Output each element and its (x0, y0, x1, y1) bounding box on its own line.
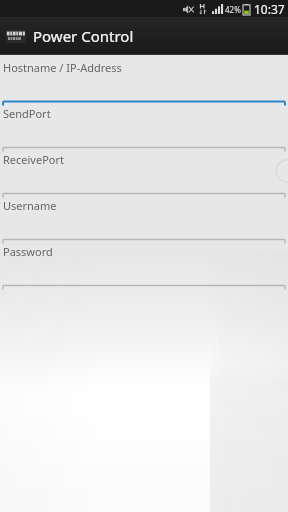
button[interactable]: Username (0, 197, 288, 243)
staticText: Username (3, 198, 57, 213)
button[interactable]: Password (0, 243, 288, 289)
button[interactable]: Hostname / IP-Address (0, 59, 288, 105)
staticText: 10:37 (254, 1, 285, 17)
staticText: ReceivePort (3, 152, 64, 167)
other: App icon (6, 30, 26, 43)
staticText: Hostname / IP-Address (3, 60, 122, 75)
staticText: Password (3, 244, 53, 259)
button[interactable]: App icon (0, 17, 288, 55)
staticText: 42% (225, 4, 241, 15)
button[interactable]: ReceivePort (0, 151, 288, 197)
button[interactable]: SendPort (0, 105, 288, 151)
staticText: Power Control (33, 26, 134, 46)
staticText: SendPort (3, 106, 51, 121)
